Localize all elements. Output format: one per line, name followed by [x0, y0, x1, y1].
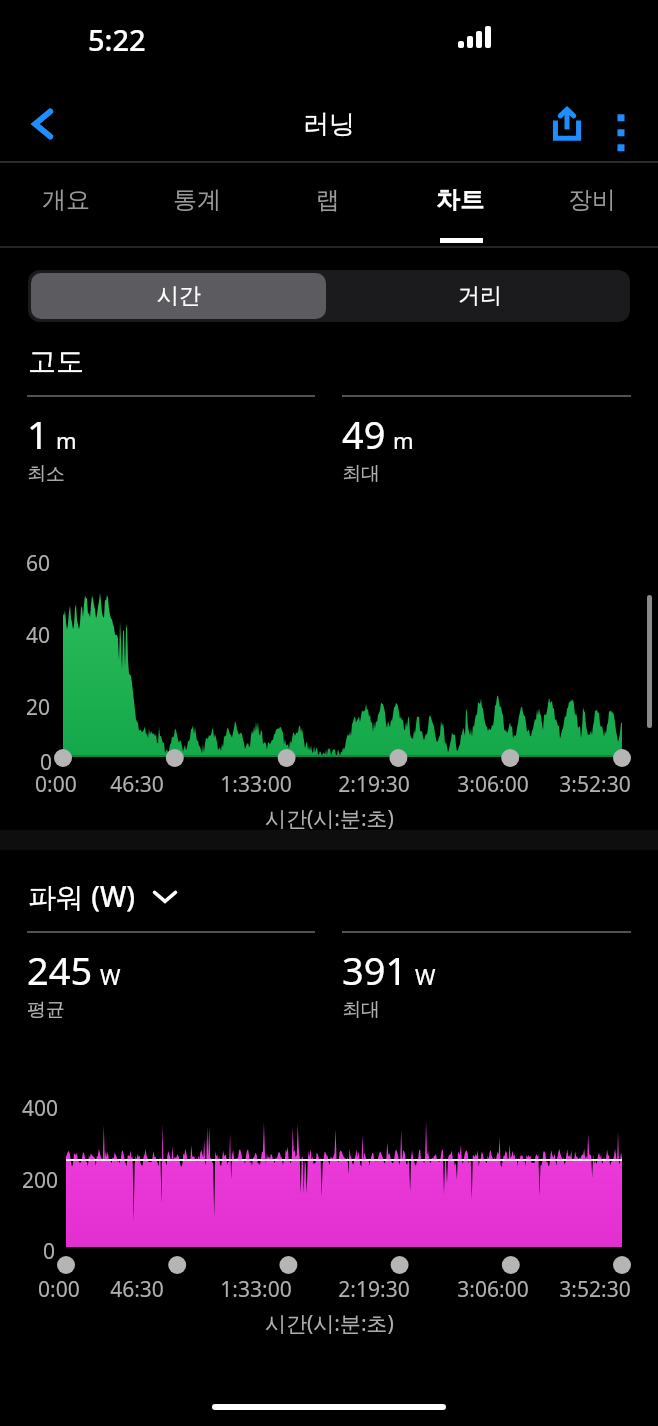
- button[interactable]: 통계: [131, 163, 262, 248]
- button[interactable]: More options: [594, 97, 648, 151]
- staticText: 최대: [342, 998, 380, 1022]
- staticText: 3:06:00: [438, 770, 548, 799]
- staticText: 3:52:30: [540, 770, 650, 799]
- staticText: 평균: [27, 998, 65, 1022]
- staticText: 200: [22, 1166, 59, 1195]
- staticText: 391: [342, 944, 408, 996]
- staticText: 개요: [42, 185, 90, 215]
- staticText: 2:19:30: [319, 770, 429, 799]
- staticText: 245: [27, 944, 93, 996]
- staticText: 파워 (W): [28, 877, 136, 915]
- staticText: 최소: [27, 462, 65, 486]
- staticText: 46:30: [82, 1275, 192, 1304]
- staticText: 고도: [28, 344, 84, 379]
- staticText: 1:33:00: [201, 770, 311, 799]
- staticText: 거리: [458, 282, 502, 310]
- button[interactable]: 거리: [329, 270, 630, 322]
- button[interactable]: 랩: [262, 163, 394, 248]
- staticText: 통계: [173, 185, 221, 215]
- staticText: 랩: [316, 185, 340, 215]
- staticText: 400: [22, 1094, 59, 1123]
- staticText: 0: [43, 1237, 56, 1266]
- button[interactable]: Back: [18, 98, 70, 150]
- button[interactable]: 시간: [31, 273, 326, 319]
- button[interactable]: 장비: [526, 163, 658, 248]
- staticText: 1: [27, 408, 49, 460]
- staticText: 60: [26, 549, 51, 578]
- staticText: 5:22: [88, 20, 146, 59]
- button[interactable]: Share: [540, 97, 594, 151]
- staticText: 2:19:30: [319, 1275, 429, 1304]
- staticText: 0: [40, 748, 53, 777]
- staticText: 시간(시:분:초): [265, 804, 394, 833]
- staticText: 러닝: [303, 108, 355, 141]
- staticText: m: [393, 425, 414, 455]
- staticText: 0:00: [38, 1275, 104, 1304]
- staticText: 시간: [157, 282, 201, 310]
- staticText: 20: [26, 693, 51, 722]
- button[interactable]: Expand: [150, 881, 180, 911]
- staticText: 49: [342, 408, 386, 460]
- staticText: W: [100, 961, 121, 991]
- staticText: 3:06:00: [438, 1275, 548, 1304]
- staticText: 3:52:30: [540, 1275, 650, 1304]
- staticText: 40: [26, 621, 51, 650]
- staticText: 차트: [436, 185, 484, 215]
- button[interactable]: 차트: [394, 163, 526, 248]
- staticText: 최대: [342, 462, 380, 486]
- staticText: W: [415, 961, 436, 991]
- staticText: 1:33:00: [201, 1275, 311, 1304]
- staticText: m: [56, 425, 77, 455]
- staticText: 0:00: [35, 770, 101, 799]
- staticText: 시간(시:분:초): [265, 1309, 394, 1338]
- staticText: 46:30: [82, 770, 192, 799]
- button[interactable]: 개요: [0, 163, 131, 248]
- staticText: 장비: [568, 185, 616, 215]
